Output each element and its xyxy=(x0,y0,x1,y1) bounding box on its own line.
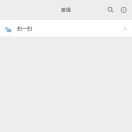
button[interactable]: 扫一扫 xyxy=(0,20,132,36)
button[interactable]: Search xyxy=(108,7,114,13)
button[interactable]: Add xyxy=(114,7,127,13)
staticText: 发现 xyxy=(61,7,71,13)
staticText: 扫一扫 xyxy=(17,26,32,32)
